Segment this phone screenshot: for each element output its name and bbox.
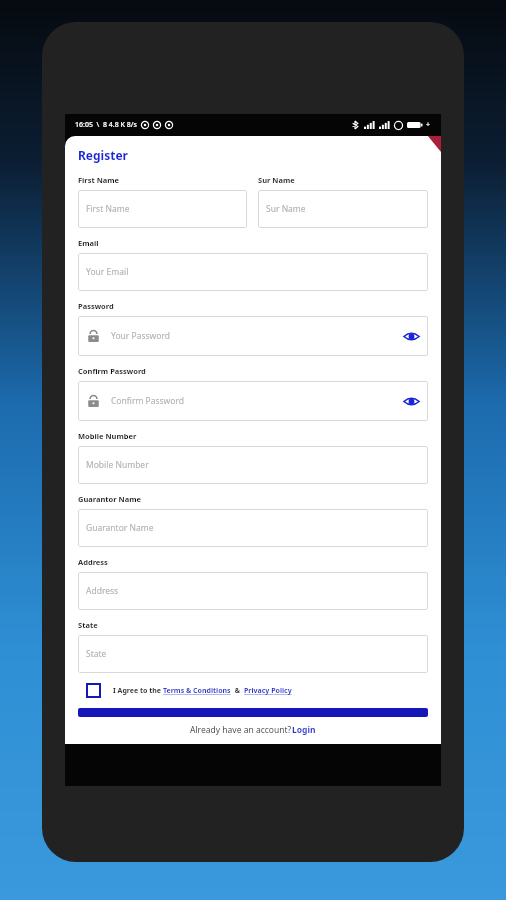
staticText: I Agree to the: [113, 686, 163, 696]
staticText: 16:05 \ 8 4.8 K 8/s: [75, 120, 137, 130]
staticText: Login: [292, 724, 316, 736]
staticText: Guarantor Name: [86, 522, 420, 534]
button[interactable]: Terms & Conditions: [163, 686, 231, 696]
button[interactable]: Register: [78, 708, 428, 717]
other: Password locked: [86, 329, 101, 344]
button[interactable]: Your Email: [78, 253, 428, 291]
staticText: State: [86, 648, 420, 660]
staticText: Password: [78, 301, 114, 311]
staticText: State: [78, 620, 98, 630]
button[interactable]: Mobile Number: [78, 446, 428, 484]
staticText: Email: [78, 238, 99, 248]
button[interactable]: Show password: [402, 327, 420, 345]
staticText: Sur Name: [258, 175, 295, 185]
button[interactable]: First Name: [78, 190, 247, 228]
staticText: Address: [78, 557, 108, 567]
staticText: Your Email: [86, 266, 420, 278]
staticText: Your Password: [111, 330, 402, 342]
staticText: &: [231, 686, 244, 696]
button[interactable]: Password locked: [78, 316, 428, 356]
button[interactable]: Sur Name: [258, 190, 428, 228]
staticText: Confirm Password: [111, 395, 402, 407]
other: Agree checkbox: [86, 683, 101, 698]
staticText: Mobile Number: [78, 431, 137, 441]
button[interactable]: Agree checkbox: [78, 681, 428, 700]
staticText: Already have an account?: [190, 724, 292, 736]
button[interactable]: State: [78, 635, 428, 673]
staticText: First Name: [86, 203, 239, 215]
staticText: +: [426, 120, 431, 130]
staticText: First Name: [78, 175, 120, 185]
staticText: Mobile Number: [86, 459, 420, 471]
button[interactable]: Address: [78, 572, 428, 610]
other: Password locked: [86, 394, 101, 409]
staticText: Confirm Password: [78, 366, 146, 376]
staticText: Guarantor Name: [78, 494, 141, 504]
staticText: Sur Name: [266, 203, 420, 215]
button[interactable]: Privacy Policy: [244, 686, 292, 696]
button[interactable]: Already have an account?: [78, 724, 428, 736]
button[interactable]: Password locked: [78, 381, 428, 421]
staticText: Register: [78, 147, 128, 163]
button[interactable]: Guarantor Name: [78, 509, 428, 547]
staticText: Address: [86, 585, 420, 597]
button[interactable]: Show password: [402, 392, 420, 410]
